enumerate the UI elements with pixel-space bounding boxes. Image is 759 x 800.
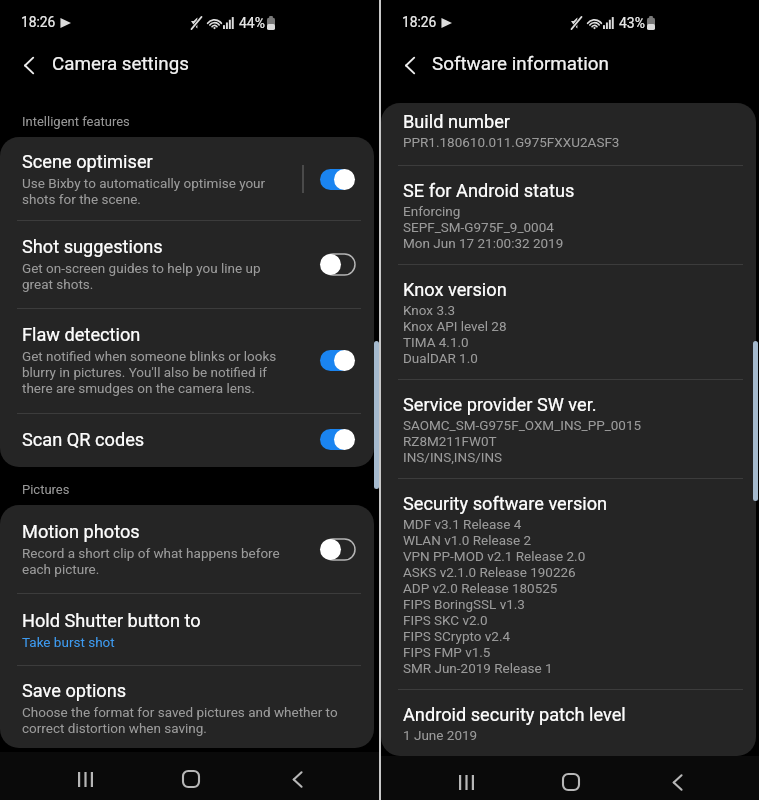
button[interactable]: Recent apps (443, 760, 489, 800)
button[interactable]: Motion photos (0, 505, 374, 593)
button[interactable]: Scene optimiser (0, 137, 374, 220)
staticText: Choose the format for saved pictures and… (22, 704, 338, 736)
staticText: Record a short clip of what happens befo… (22, 545, 280, 577)
staticText: 43% (619, 15, 645, 31)
button[interactable]: On (320, 169, 355, 190)
button[interactable]: Off (320, 254, 355, 275)
staticText: SE for Android status (403, 180, 575, 201)
button[interactable]: Flaw detection (0, 309, 374, 413)
staticText: Build number (403, 111, 511, 132)
staticText: Knox 3.3 Knox API level 28 TIMA 4.1.0 Du… (403, 302, 507, 366)
staticText: Pictures (22, 482, 70, 497)
staticText: Hold Shutter button to (22, 610, 201, 631)
button[interactable]: Shot suggestions (0, 221, 374, 308)
button[interactable]: Recent apps (62, 756, 108, 800)
staticText: Get on-screen guides to help you line up… (22, 260, 261, 292)
staticText: MDF v3.1 Release 4 WLAN v1.0 Release 2 V… (403, 516, 586, 676)
staticText: Knox version (403, 279, 507, 300)
button[interactable]: Security software version (381, 479, 756, 689)
staticText: 1 June 2019 (403, 727, 478, 743)
staticText: Take burst shot (22, 634, 115, 650)
button[interactable]: Build number (381, 103, 756, 165)
staticText: Scene optimiser (22, 151, 153, 172)
staticText: Service provider SW ver. (403, 394, 597, 415)
button[interactable]: Back (654, 760, 700, 800)
button[interactable]: Knox version (381, 265, 756, 379)
button[interactable]: Home (168, 756, 214, 800)
staticText: Get notified when someone blinks or look… (22, 348, 277, 396)
button[interactable]: Android security patch level (381, 690, 756, 756)
button[interactable]: On (320, 429, 355, 450)
staticText: PPR1.180610.011.G975FXXU2ASF3 (403, 134, 620, 150)
button[interactable]: SE for Android status (381, 166, 756, 264)
staticText: Flaw detection (22, 324, 141, 345)
button[interactable]: Back (274, 756, 320, 800)
staticText: SAOMC_SM-G975F_OXM_INS_PP_0015 RZ8M211FW… (403, 417, 642, 465)
staticText: Save options (22, 680, 127, 701)
button[interactable]: Navigate up (13, 49, 45, 81)
staticText: Security software version (403, 493, 608, 514)
button[interactable]: Service provider SW ver. (381, 380, 756, 478)
staticText: Intelligent features (22, 114, 130, 129)
staticText: Shot suggestions (22, 236, 163, 257)
staticText: 18:26 (402, 14, 437, 30)
staticText: Use Bixby to automatically optimise your… (22, 175, 266, 207)
staticText: Motion photos (22, 521, 140, 542)
staticText: Enforcing SEPF_SM-G975F_9_0004 Mon Jun 1… (403, 203, 564, 251)
staticText: Android security patch level (403, 704, 626, 725)
button[interactable]: Hold Shutter button to (0, 594, 374, 665)
button[interactable]: Scan QR codes (0, 414, 374, 467)
staticText: Camera settings (52, 53, 189, 75)
staticText: 18:26 (21, 14, 56, 30)
staticText: 44% (239, 15, 265, 31)
button[interactable]: Home (548, 760, 594, 800)
button[interactable]: Off (320, 539, 355, 560)
button[interactable]: Navigate up (394, 49, 426, 81)
button[interactable]: On (320, 350, 355, 371)
staticText: Software information (432, 53, 609, 75)
staticText: Scan QR codes (22, 429, 145, 450)
button[interactable]: Save options (0, 666, 374, 748)
